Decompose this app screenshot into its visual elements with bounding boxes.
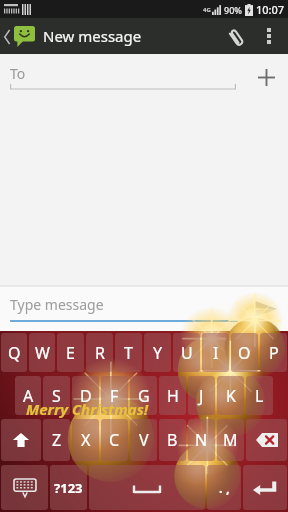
staticText: W bbox=[35, 342, 50, 364]
button[interactable]: U bbox=[173, 333, 200, 372]
staticText: D bbox=[80, 385, 92, 407]
button[interactable]: G bbox=[130, 376, 157, 415]
staticText: S bbox=[52, 385, 61, 407]
staticText: L bbox=[255, 385, 264, 407]
button[interactable]: Shift bbox=[1, 419, 41, 461]
button[interactable]: X bbox=[72, 419, 99, 461]
staticText: K bbox=[226, 385, 236, 407]
button[interactable]: T bbox=[115, 333, 142, 372]
staticText: . , bbox=[219, 479, 230, 497]
staticText: R bbox=[95, 342, 105, 364]
button[interactable]: Q bbox=[1, 333, 27, 372]
button[interactable]: . , bbox=[207, 465, 241, 510]
button[interactable]: E bbox=[57, 333, 84, 372]
staticText: M bbox=[223, 429, 238, 451]
button[interactable]: ?123 bbox=[50, 465, 87, 510]
button[interactable]: Z bbox=[43, 419, 70, 461]
button[interactable]: M bbox=[217, 419, 244, 461]
button[interactable]: Y bbox=[144, 333, 171, 372]
button[interactable]: V bbox=[130, 419, 157, 461]
staticText: N bbox=[195, 429, 208, 451]
button[interactable]: Type message bbox=[10, 295, 238, 322]
staticText: 4G bbox=[203, 6, 211, 14]
staticText: I bbox=[213, 342, 219, 364]
staticText: G bbox=[138, 385, 150, 407]
staticText: H bbox=[167, 385, 179, 407]
button[interactable]: Space bbox=[89, 465, 205, 510]
button[interactable]: A bbox=[15, 376, 41, 415]
staticText: New message bbox=[43, 26, 142, 46]
button[interactable]: I bbox=[202, 333, 229, 372]
staticText: V bbox=[139, 429, 149, 451]
staticText: T bbox=[124, 342, 133, 364]
button[interactable]: To bbox=[10, 64, 236, 90]
button[interactable]: S bbox=[43, 376, 70, 415]
button[interactable]: Delete bbox=[246, 419, 287, 461]
staticText: 10:07 bbox=[256, 2, 285, 17]
button[interactable]: O bbox=[231, 333, 258, 372]
button[interactable]: B bbox=[159, 419, 186, 461]
staticText: P bbox=[269, 342, 279, 364]
button[interactable]: N bbox=[188, 419, 215, 461]
button[interactable]: K bbox=[217, 376, 244, 415]
button[interactable]: L bbox=[246, 376, 273, 415]
button[interactable]: H bbox=[159, 376, 186, 415]
button[interactable]: J bbox=[188, 376, 215, 415]
button[interactable]: Enter bbox=[243, 465, 287, 510]
staticText: B bbox=[167, 429, 178, 451]
staticText: Y bbox=[153, 342, 163, 364]
button[interactable]: Attach bbox=[218, 18, 254, 54]
button[interactable]: Navigate up bbox=[2, 26, 37, 47]
button[interactable]: Send bbox=[244, 287, 288, 331]
button[interactable]: R bbox=[86, 333, 113, 372]
staticText: Z bbox=[52, 429, 62, 451]
staticText: F bbox=[110, 385, 119, 407]
button[interactable]: D bbox=[72, 376, 99, 415]
staticText: O bbox=[238, 342, 251, 364]
button[interactable]: F bbox=[101, 376, 128, 415]
button[interactable]: W bbox=[29, 333, 55, 372]
button[interactable]: Switch keyboard bbox=[1, 465, 48, 510]
button[interactable]: C bbox=[101, 419, 128, 461]
button[interactable]: More options bbox=[254, 21, 284, 51]
staticText: Type message bbox=[10, 295, 104, 314]
staticText: A bbox=[23, 385, 34, 407]
staticText: 90% bbox=[224, 4, 242, 16]
staticText: U bbox=[181, 342, 193, 364]
button[interactable]: Add recipient bbox=[244, 55, 288, 99]
staticText: ?123 bbox=[54, 479, 83, 497]
staticText: E bbox=[66, 342, 75, 364]
button[interactable]: P bbox=[260, 333, 287, 372]
staticText: X bbox=[81, 429, 91, 451]
staticText: J bbox=[199, 385, 204, 407]
staticText: Merry Christmas! bbox=[26, 399, 149, 419]
staticText: C bbox=[109, 429, 120, 451]
staticText: To bbox=[10, 64, 26, 83]
staticText: Q bbox=[8, 342, 21, 364]
